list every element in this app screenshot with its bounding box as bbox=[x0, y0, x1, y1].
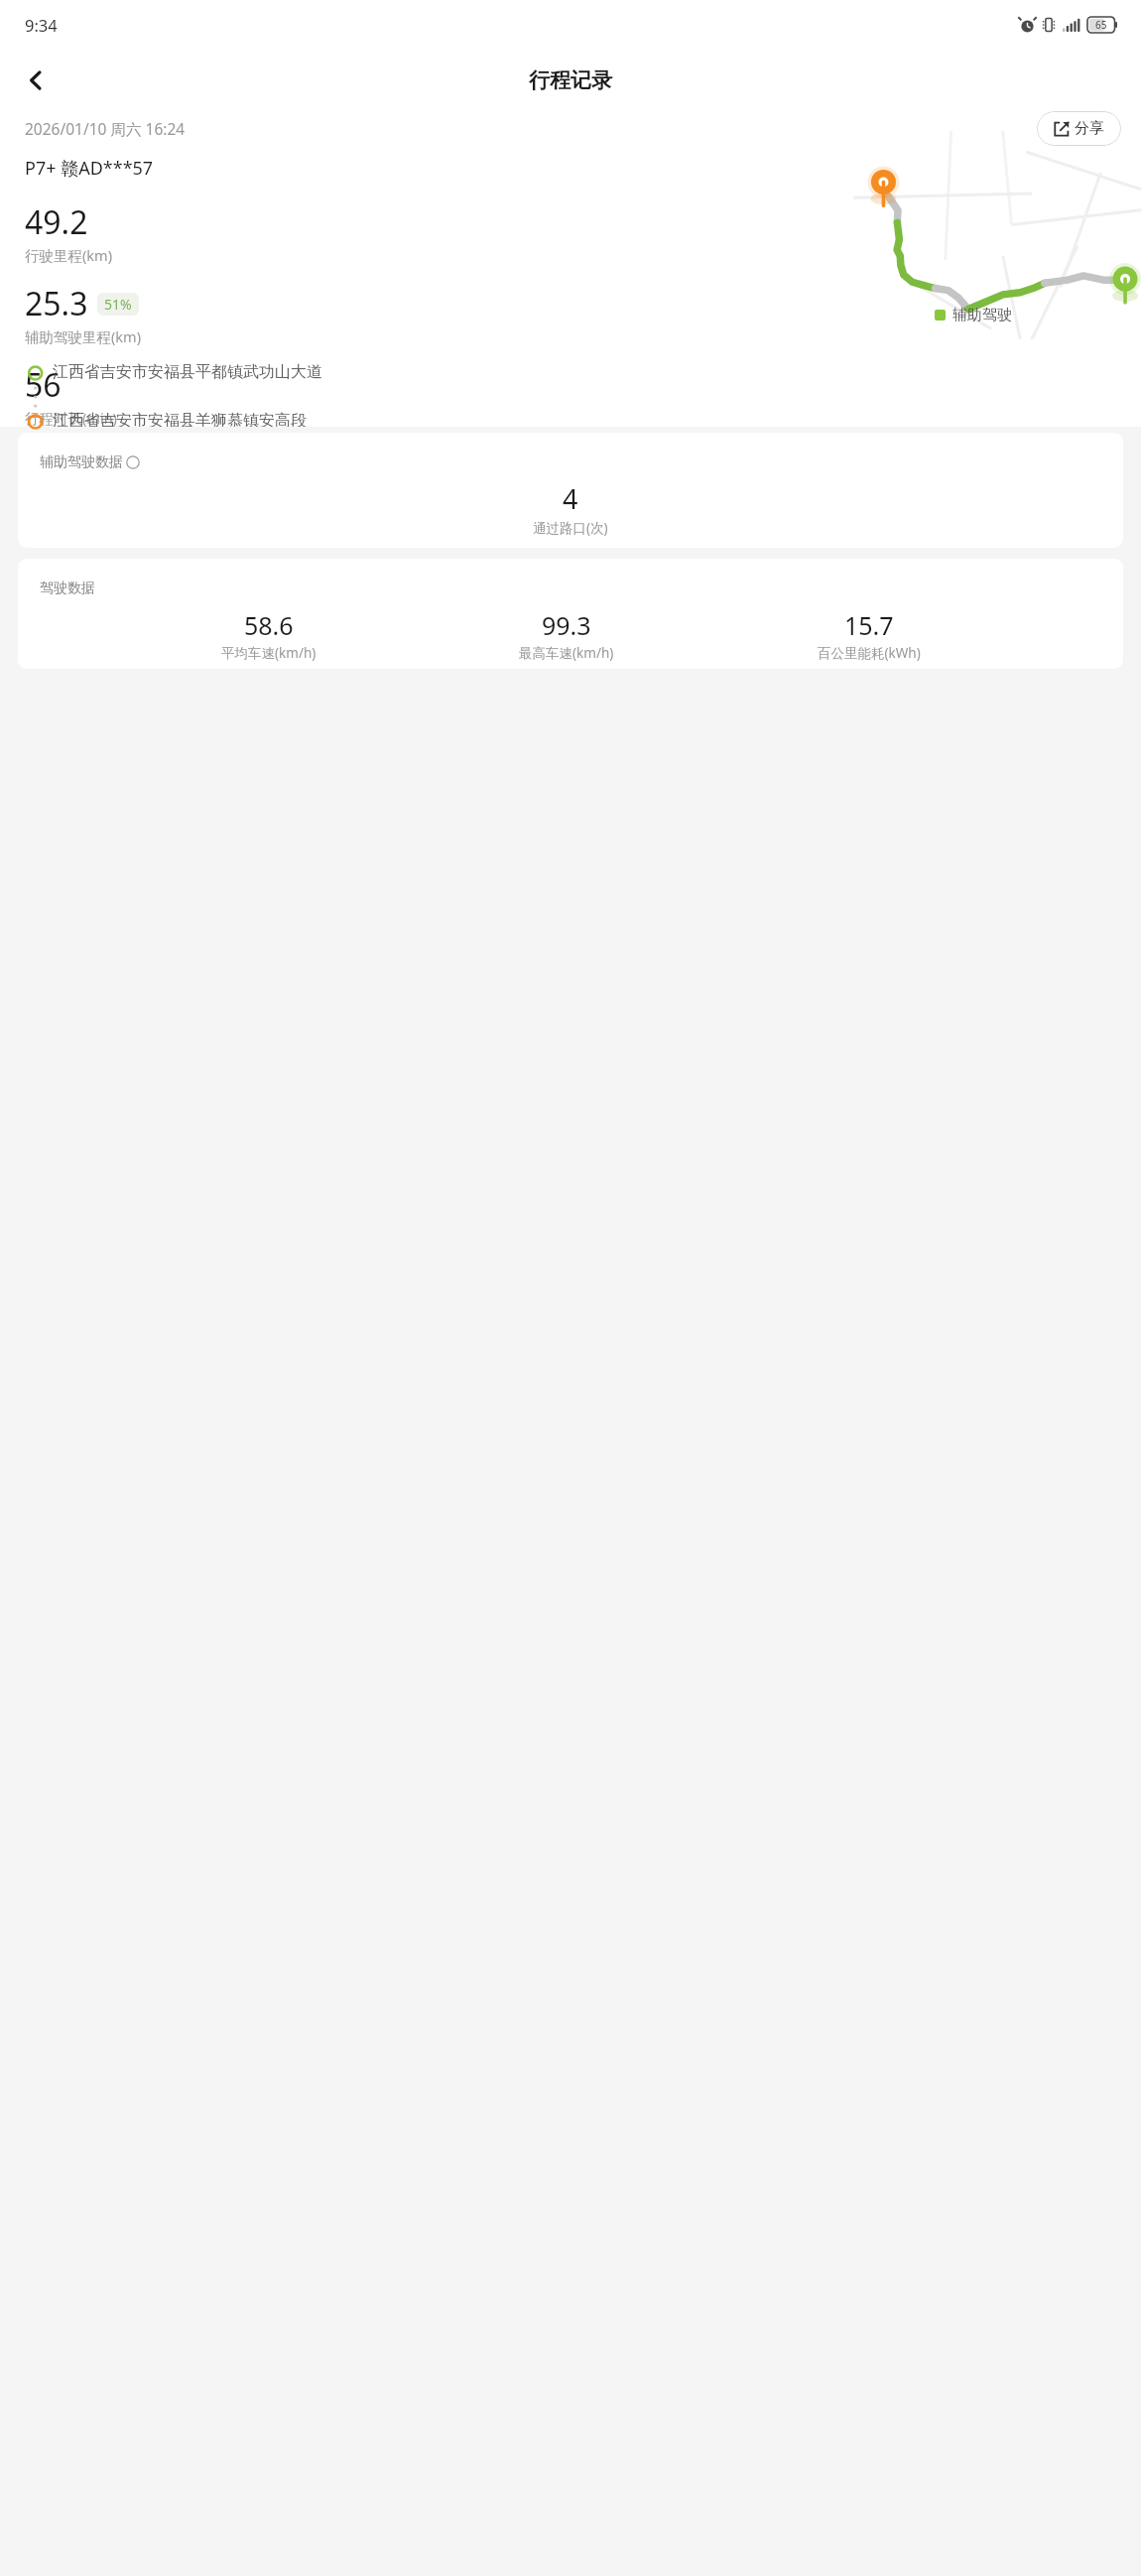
staticText: 51% bbox=[104, 295, 132, 314]
staticText: 58.6 bbox=[244, 608, 294, 642]
staticText: 99.3 bbox=[542, 608, 591, 642]
staticText: 行程时长(min) bbox=[25, 408, 117, 427]
staticText: 行驶里程(km) bbox=[25, 245, 113, 265]
button[interactable]: 驾驶数据 bbox=[18, 559, 1123, 669]
staticText: P7+ 赣AD***57 bbox=[25, 156, 154, 181]
staticText: 25.3 bbox=[25, 282, 88, 325]
button[interactable]: 辅助驾驶数据 bbox=[18, 433, 1123, 548]
staticText: 分享 bbox=[1075, 119, 1104, 138]
staticText: 江西省吉安市安福县平都镇武功山大道 bbox=[53, 362, 322, 382]
staticText: 49.2 bbox=[25, 200, 88, 244]
staticText: 2026/01/10 周六 16:24 bbox=[25, 118, 186, 139]
staticText: 辅助驾驶 bbox=[952, 306, 1012, 324]
staticText: 4 bbox=[563, 480, 578, 517]
staticText: 56 bbox=[25, 363, 62, 407]
staticText: 江西省吉安市安福县羊狮慕镇安高段 bbox=[53, 411, 307, 427]
staticText: 通过路口(次) bbox=[533, 519, 608, 537]
staticText: 平均车速(km/h) bbox=[221, 644, 317, 662]
staticText: 百公里能耗(kWh) bbox=[818, 644, 921, 662]
staticText: 9:34 bbox=[25, 14, 58, 36]
staticText: 最高车速(km/h) bbox=[519, 644, 614, 662]
staticText: 驾驶数据 bbox=[40, 580, 95, 597]
staticText: 辅助驾驶数据 bbox=[40, 453, 123, 471]
staticText: 辅助驾驶里程(km) bbox=[25, 326, 142, 346]
staticText: 15.7 bbox=[844, 608, 894, 642]
button[interactable]: Back bbox=[12, 57, 60, 104]
staticText: 65 bbox=[1095, 18, 1107, 32]
staticText: 行程记录 bbox=[529, 67, 612, 93]
button[interactable]: 分享 bbox=[1037, 111, 1121, 146]
